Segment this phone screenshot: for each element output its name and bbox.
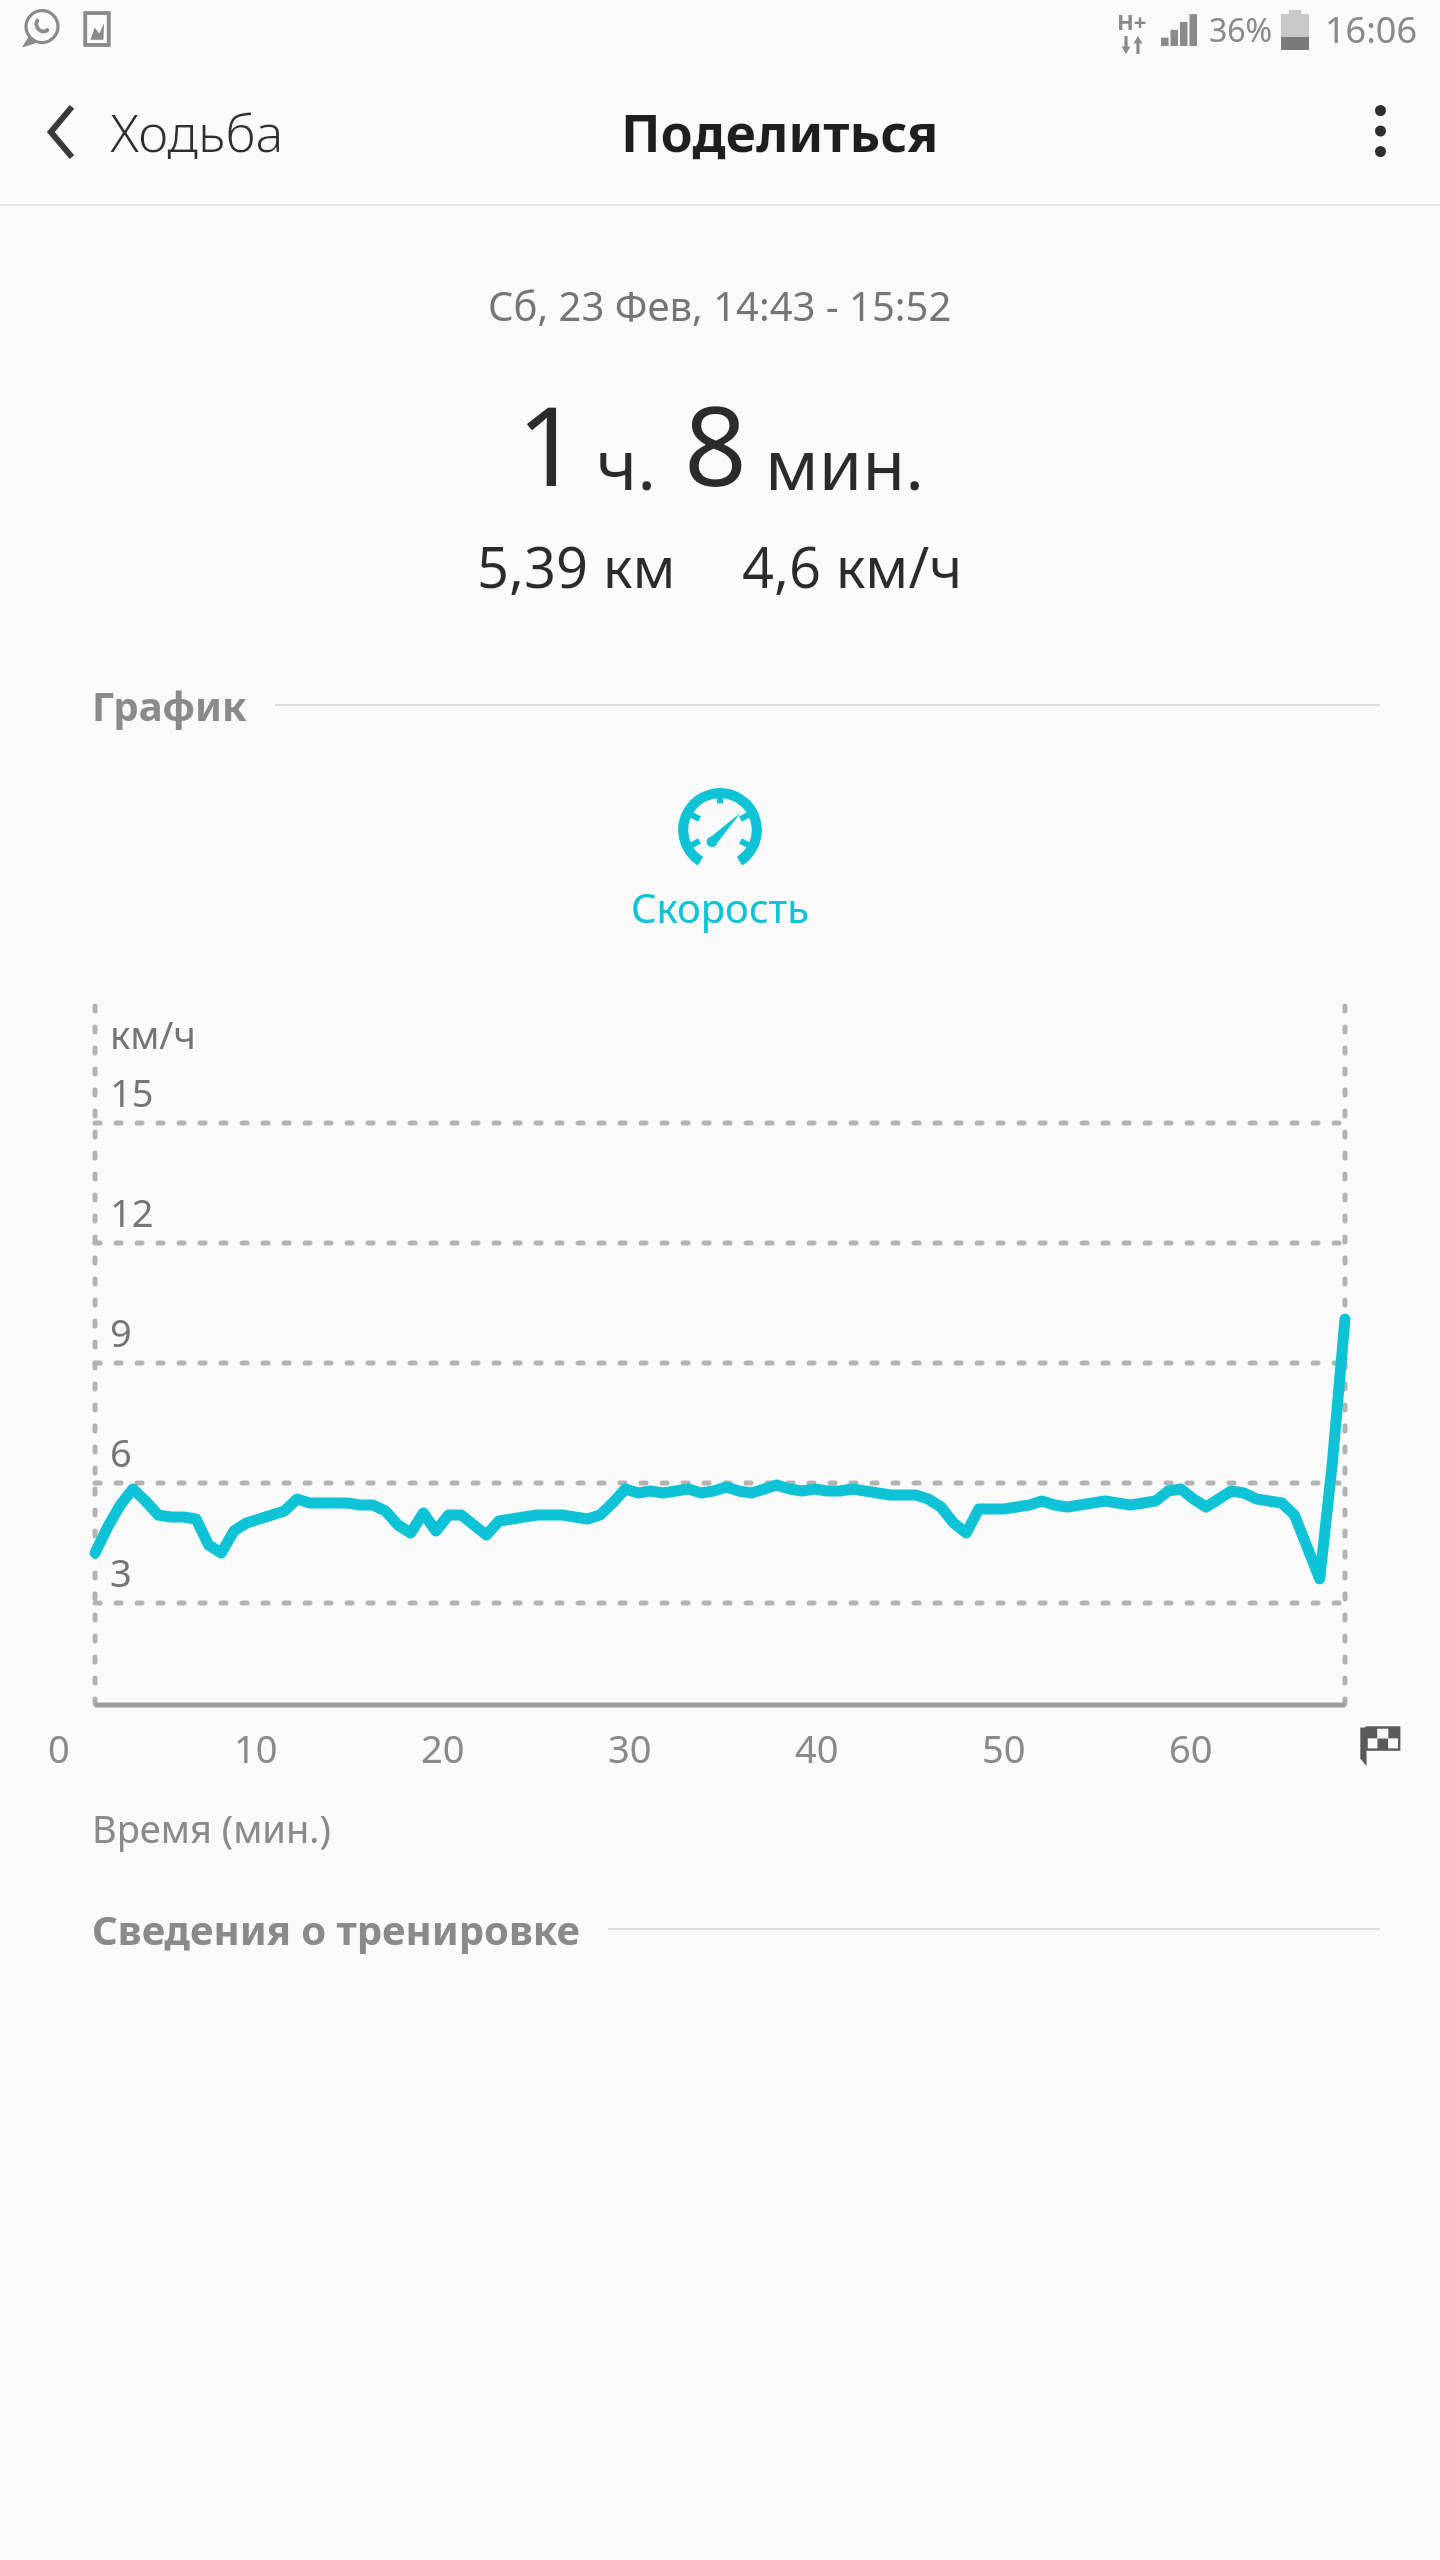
staticText: 1: [517, 368, 580, 518]
staticText: 16:06: [1325, 5, 1418, 54]
staticText: ч.: [596, 415, 656, 510]
staticText: 3: [110, 1546, 132, 1598]
staticText: 10: [234, 1722, 278, 1774]
staticText: Сведения о тренировке: [92, 1902, 580, 1956]
staticText: 12: [110, 1186, 154, 1238]
staticText: H+: [1117, 6, 1147, 36]
button[interactable]: Скорость: [597, 772, 843, 944]
staticText: 9: [110, 1306, 132, 1358]
other: Назад: [46, 106, 76, 158]
other: Финиш: [1356, 1722, 1404, 1768]
staticText: 5,39 км: [477, 528, 676, 604]
staticText: 36%: [1209, 8, 1273, 52]
staticText: 50: [982, 1722, 1026, 1774]
staticText: 60: [1169, 1722, 1213, 1774]
staticText: График: [92, 678, 247, 732]
staticText: Скорость: [631, 880, 809, 934]
staticText: км/ч: [110, 1008, 196, 1060]
staticText: 15: [110, 1066, 154, 1118]
staticText: 8: [684, 368, 747, 518]
staticText: 0: [48, 1722, 70, 1774]
staticText: 4,6 км/ч: [742, 528, 963, 604]
staticText: 20: [421, 1722, 465, 1774]
staticText: Время (мин.): [92, 1802, 331, 1854]
button[interactable]: Назад: [0, 74, 308, 189]
button[interactable]: Дополнительно: [1338, 89, 1422, 173]
other: Скорость: [674, 782, 766, 862]
staticText: мин.: [765, 415, 924, 510]
staticText: 40: [795, 1722, 839, 1774]
staticText: Сб, 23 Фев, 14:43 - 15:52: [488, 278, 952, 332]
staticText: Ходьба: [110, 96, 284, 167]
button[interactable]: Поделиться: [601, 76, 959, 187]
staticText: 6: [110, 1426, 132, 1478]
staticText: 30: [608, 1722, 652, 1774]
staticText: Поделиться: [621, 96, 939, 167]
